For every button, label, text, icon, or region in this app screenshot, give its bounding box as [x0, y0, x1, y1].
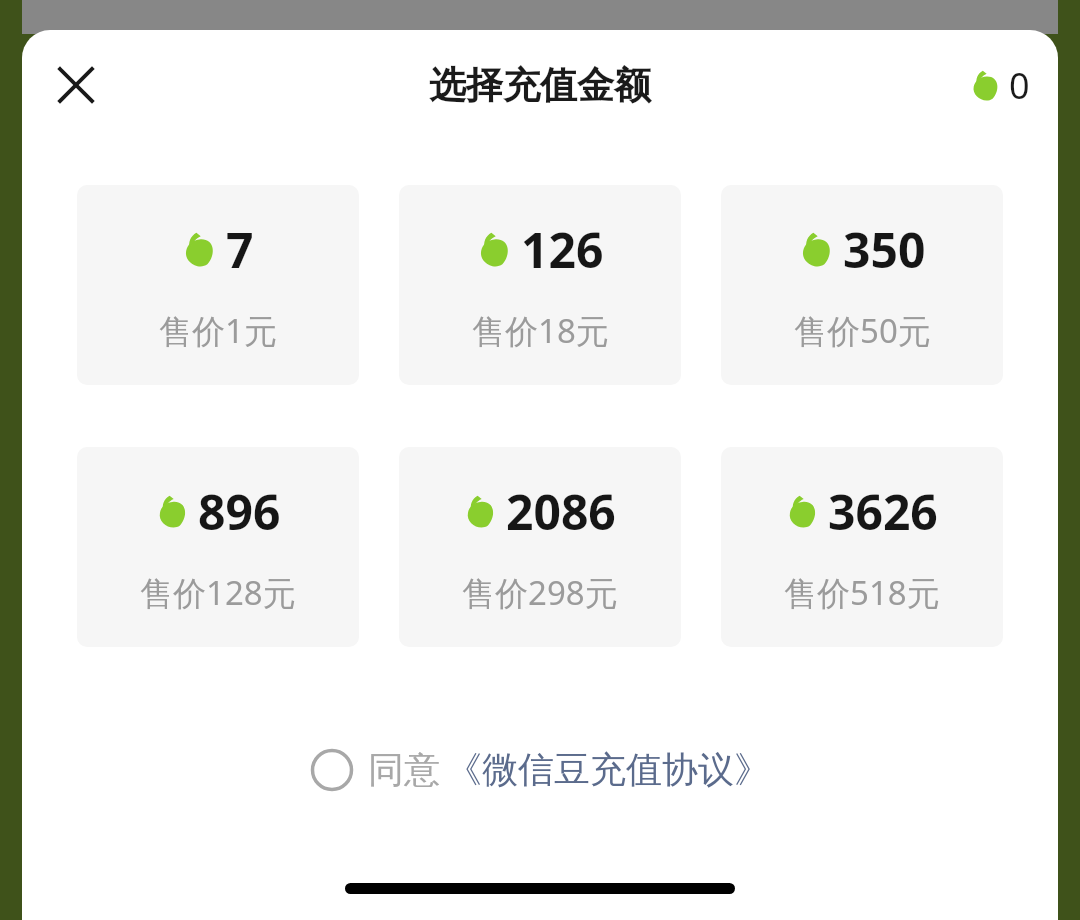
staticText: 350 — [843, 217, 926, 282]
button[interactable]: 同意 — [22, 747, 1058, 792]
staticText: 同意 — [368, 747, 440, 792]
button[interactable]: 896 — [77, 447, 359, 647]
button[interactable]: 3626 — [721, 447, 1003, 647]
staticText: 售价518元 — [784, 570, 940, 615]
button[interactable]: 2086 — [399, 447, 681, 647]
button[interactable]: 0 — [970, 61, 1030, 110]
button[interactable]: 关闭 — [44, 53, 108, 117]
staticText: 售价128元 — [140, 570, 296, 615]
staticText: 售价50元 — [794, 308, 931, 353]
button[interactable]: 《微信豆充值协议》 — [446, 747, 770, 792]
staticText: 2086 — [506, 479, 616, 544]
staticText: 0 — [1009, 61, 1030, 110]
button[interactable]: 350 — [721, 185, 1003, 385]
staticText: 选择充值金额 — [429, 62, 651, 109]
staticText: 3626 — [828, 479, 938, 544]
staticText: 售价298元 — [462, 570, 618, 615]
staticText: 售价1元 — [159, 308, 277, 353]
staticText: 896 — [198, 479, 281, 544]
button[interactable]: 7 — [77, 185, 359, 385]
staticText: 售价18元 — [472, 308, 609, 353]
button[interactable]: 126 — [399, 185, 681, 385]
staticText: 126 — [521, 217, 604, 282]
staticText: 7 — [226, 217, 254, 282]
